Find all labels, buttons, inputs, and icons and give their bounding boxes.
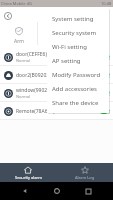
- button[interactable]: AP setting: [47, 54, 109, 68]
- button[interactable]: Security system: [47, 26, 109, 40]
- button[interactable]: [100, 109, 110, 114]
- staticText: Add accessories: [52, 85, 97, 93]
- button[interactable]: Modify Password: [47, 68, 109, 82]
- button[interactable]: [100, 73, 110, 78]
- staticText: Arm: [14, 38, 24, 45]
- staticText: Modify Password: [52, 71, 101, 79]
- button[interactable]: Arm: [0, 18, 37, 48]
- button[interactable]: [100, 55, 110, 60]
- button[interactable]: window(9902): [0, 84, 113, 102]
- button[interactable]: System setting: [47, 12, 109, 26]
- button[interactable]: Back: [18, 184, 32, 198]
- staticText: window(9902): [16, 87, 49, 94]
- staticText: Remote(78A602): [16, 108, 55, 115]
- button[interactable]: Recents: [81, 184, 95, 198]
- button[interactable]: Remote(78A602): [0, 102, 113, 120]
- button[interactable]: [100, 91, 110, 96]
- button[interactable]: Back: [4, 12, 12, 20]
- staticText: door2(B09203): [16, 72, 51, 79]
- staticText: Share the device: [52, 99, 99, 107]
- staticText: China Mobile 4G: [1, 1, 32, 6]
- staticText: System setting: [52, 15, 94, 23]
- button[interactable]: door2(B09203): [0, 66, 113, 84]
- button[interactable]: Share the device: [47, 96, 109, 110]
- button[interactable]: Add accessories: [47, 82, 109, 96]
- staticText: Normal: [16, 94, 31, 99]
- button[interactable]: Home arm: [76, 18, 113, 48]
- staticText: Normal: [16, 58, 31, 63]
- staticText: Wi-Fi setting: [52, 43, 87, 51]
- button[interactable]: Security alarm: [0, 163, 56, 182]
- staticText: AP setting: [52, 57, 81, 65]
- staticText: 10:48: [101, 1, 112, 6]
- button[interactable]: Wi-Fi setting: [47, 40, 109, 54]
- staticText: Alarm Log: [75, 175, 95, 180]
- button[interactable]: Home: [50, 184, 64, 198]
- button[interactable]: Alarm Log: [56, 163, 113, 182]
- button[interactable]: Disarm: [38, 18, 75, 48]
- staticText: door(CEFFE6): [16, 51, 47, 58]
- button[interactable]: door(CEFFE6): [0, 48, 113, 66]
- staticText: Security system: [52, 29, 97, 37]
- staticText: Security alarm: [15, 175, 42, 180]
